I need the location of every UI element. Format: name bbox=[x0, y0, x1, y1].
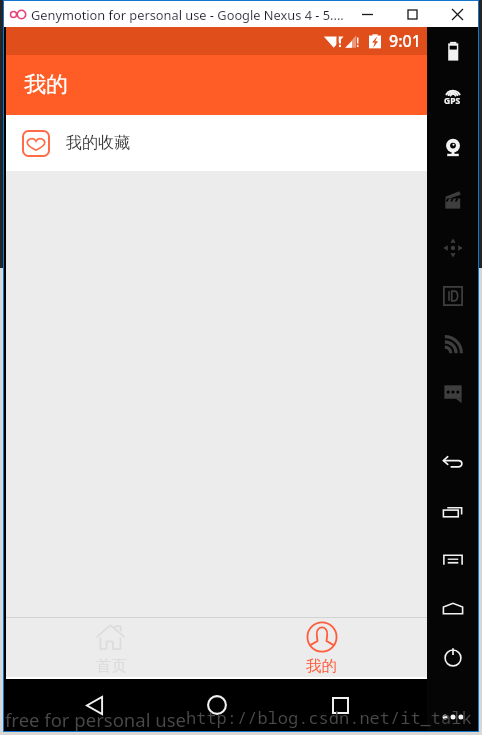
button[interactable]: Back bbox=[427, 445, 478, 479]
staticText: 我的 bbox=[306, 656, 337, 676]
button[interactable]: More options bbox=[427, 700, 478, 734]
button[interactable]: Home bbox=[427, 592, 478, 626]
button[interactable]: Identifiers bbox=[427, 279, 478, 313]
button[interactable]: Screen record bbox=[427, 183, 478, 217]
button[interactable]: Messages bbox=[427, 376, 478, 410]
staticText: GPS bbox=[444, 95, 461, 107]
button[interactable]: Home bbox=[195, 683, 239, 727]
staticText: 我的 bbox=[24, 71, 68, 99]
staticText: 9:01 bbox=[389, 30, 421, 52]
button[interactable]: Move bbox=[427, 231, 478, 265]
staticText: 首页 bbox=[96, 656, 127, 676]
staticText: free for personal use bbox=[5, 707, 186, 732]
button[interactable]: Close bbox=[435, 1, 480, 27]
staticText: 我的收藏 bbox=[66, 133, 130, 153]
button[interactable]: Minimize bbox=[345, 1, 390, 27]
button[interactable]: Network bbox=[427, 328, 478, 362]
button[interactable]: 我的 bbox=[216, 618, 427, 677]
button[interactable]: Back bbox=[72, 683, 116, 727]
button[interactable]: 我的收藏 bbox=[6, 115, 427, 171]
button[interactable]: Power bbox=[427, 640, 478, 674]
staticText: Genymotion for personal use - Google Nex… bbox=[31, 6, 344, 23]
button[interactable]: Recent apps bbox=[427, 495, 478, 529]
button[interactable]: GPS bbox=[427, 84, 478, 118]
button[interactable]: Recents bbox=[318, 683, 362, 727]
button[interactable]: Menu bbox=[427, 543, 478, 577]
staticText: http://blog.csdn.net/it_talk bbox=[186, 706, 472, 729]
button[interactable]: Maximize bbox=[390, 1, 435, 27]
button[interactable]: Camera bbox=[427, 131, 478, 165]
button[interactable]: Battery level bbox=[427, 34, 478, 68]
